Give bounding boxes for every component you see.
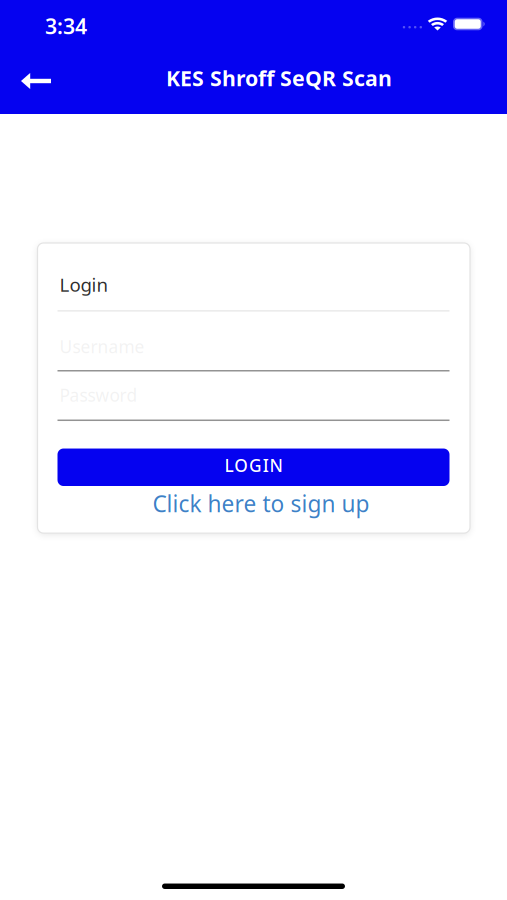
staticText: KES Shroff SeQR Scan bbox=[166, 64, 392, 92]
textField[interactable]: Username bbox=[57, 335, 449, 371]
button[interactable]: LOGIN bbox=[57, 448, 449, 486]
button[interactable]: Click here to sign up bbox=[57, 488, 449, 519]
staticText: LOGIN bbox=[224, 454, 283, 477]
staticText: Username bbox=[59, 335, 144, 358]
staticText: 3:34 bbox=[45, 12, 87, 40]
staticText: Click here to sign up bbox=[152, 488, 369, 519]
staticText: Password bbox=[59, 383, 137, 406]
staticText: Login bbox=[59, 272, 108, 297]
button[interactable]: Back bbox=[0, 48, 56, 114]
textField[interactable]: Password bbox=[57, 383, 449, 421]
